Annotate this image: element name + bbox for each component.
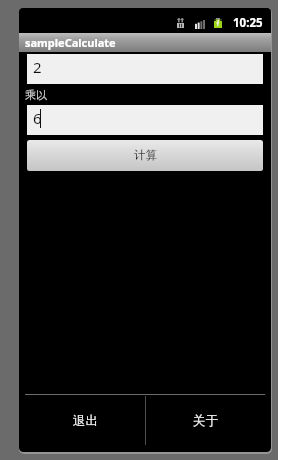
button[interactable]: 2 — [27, 54, 263, 84]
staticText: 退出 — [73, 413, 98, 429]
staticText: 关于 — [193, 413, 218, 429]
button[interactable]: 计算 — [27, 140, 263, 171]
staticText: 10:25 — [233, 15, 263, 31]
staticText: 乘以 — [25, 88, 47, 102]
other: Battery charging — [214, 18, 222, 28]
staticText: sampleCalculate — [25, 35, 116, 50]
staticText: 6 — [33, 108, 42, 128]
other: USB debugging connected — [177, 18, 184, 28]
button[interactable]: 退出 — [25, 395, 145, 452]
staticText: 计算 — [134, 148, 157, 162]
other: Signal strength — [195, 20, 205, 29]
button[interactable]: 关于 — [145, 395, 265, 452]
staticText: 2 — [33, 57, 42, 77]
button[interactable]: 6 — [27, 105, 263, 135]
